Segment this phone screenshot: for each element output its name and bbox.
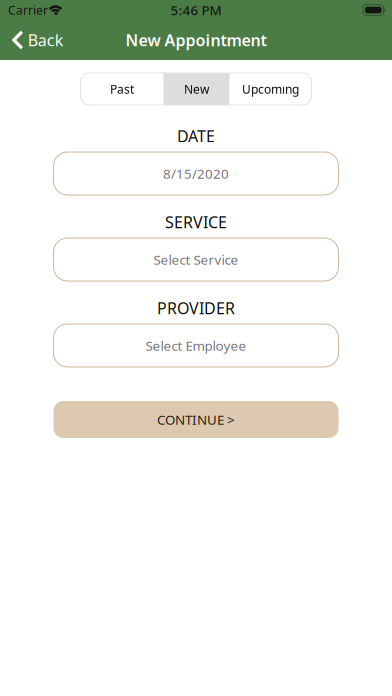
button[interactable]: Upcoming	[229, 73, 311, 105]
staticText: PROVIDER	[157, 297, 235, 319]
button[interactable]: Back	[0, 21, 74, 59]
staticText: Back	[28, 29, 64, 51]
staticText: Select Employee	[145, 337, 246, 354]
button[interactable]: Select Service	[53, 238, 338, 281]
button[interactable]: CONTINUE >	[53, 401, 338, 438]
button[interactable]: 8/15/2020	[53, 152, 338, 195]
button[interactable]: Select Employee	[53, 324, 338, 367]
staticText: Carrier	[8, 2, 48, 18]
staticText: 5:46 PM	[170, 1, 221, 19]
staticText: New Appointment	[125, 29, 266, 51]
staticText: 8/15/2020	[163, 165, 229, 182]
staticText: Past	[110, 81, 134, 97]
staticText: Upcoming	[242, 81, 299, 97]
staticText: DATE	[177, 125, 215, 147]
staticText: SERVICE	[165, 211, 227, 233]
staticText: Select Service	[153, 251, 238, 268]
button[interactable]: Past	[80, 73, 163, 105]
staticText: CONTINUE >	[157, 411, 235, 428]
button[interactable]: New	[163, 73, 229, 105]
staticText: New	[184, 81, 209, 97]
